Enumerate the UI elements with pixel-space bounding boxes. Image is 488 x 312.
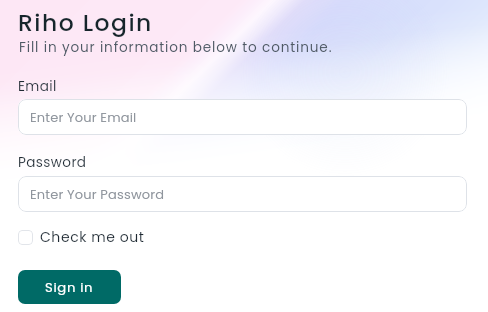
staticText: Email [18,77,57,96]
staticText: Enter Your Email [30,108,137,126]
staticText: Riho Login [18,6,153,39]
staticText: Password [18,153,87,172]
button[interactable]: Check me out [18,227,145,247]
staticText: Sign in [45,278,94,296]
button[interactable]: Enter Your Password [18,176,467,212]
staticText: Enter Your Password [30,185,165,203]
staticText: Fill in your information below to contin… [19,38,333,57]
staticText: Check me out [40,227,145,247]
button[interactable]: Enter Your Email [18,99,467,135]
button[interactable]: Sign in [18,270,121,304]
